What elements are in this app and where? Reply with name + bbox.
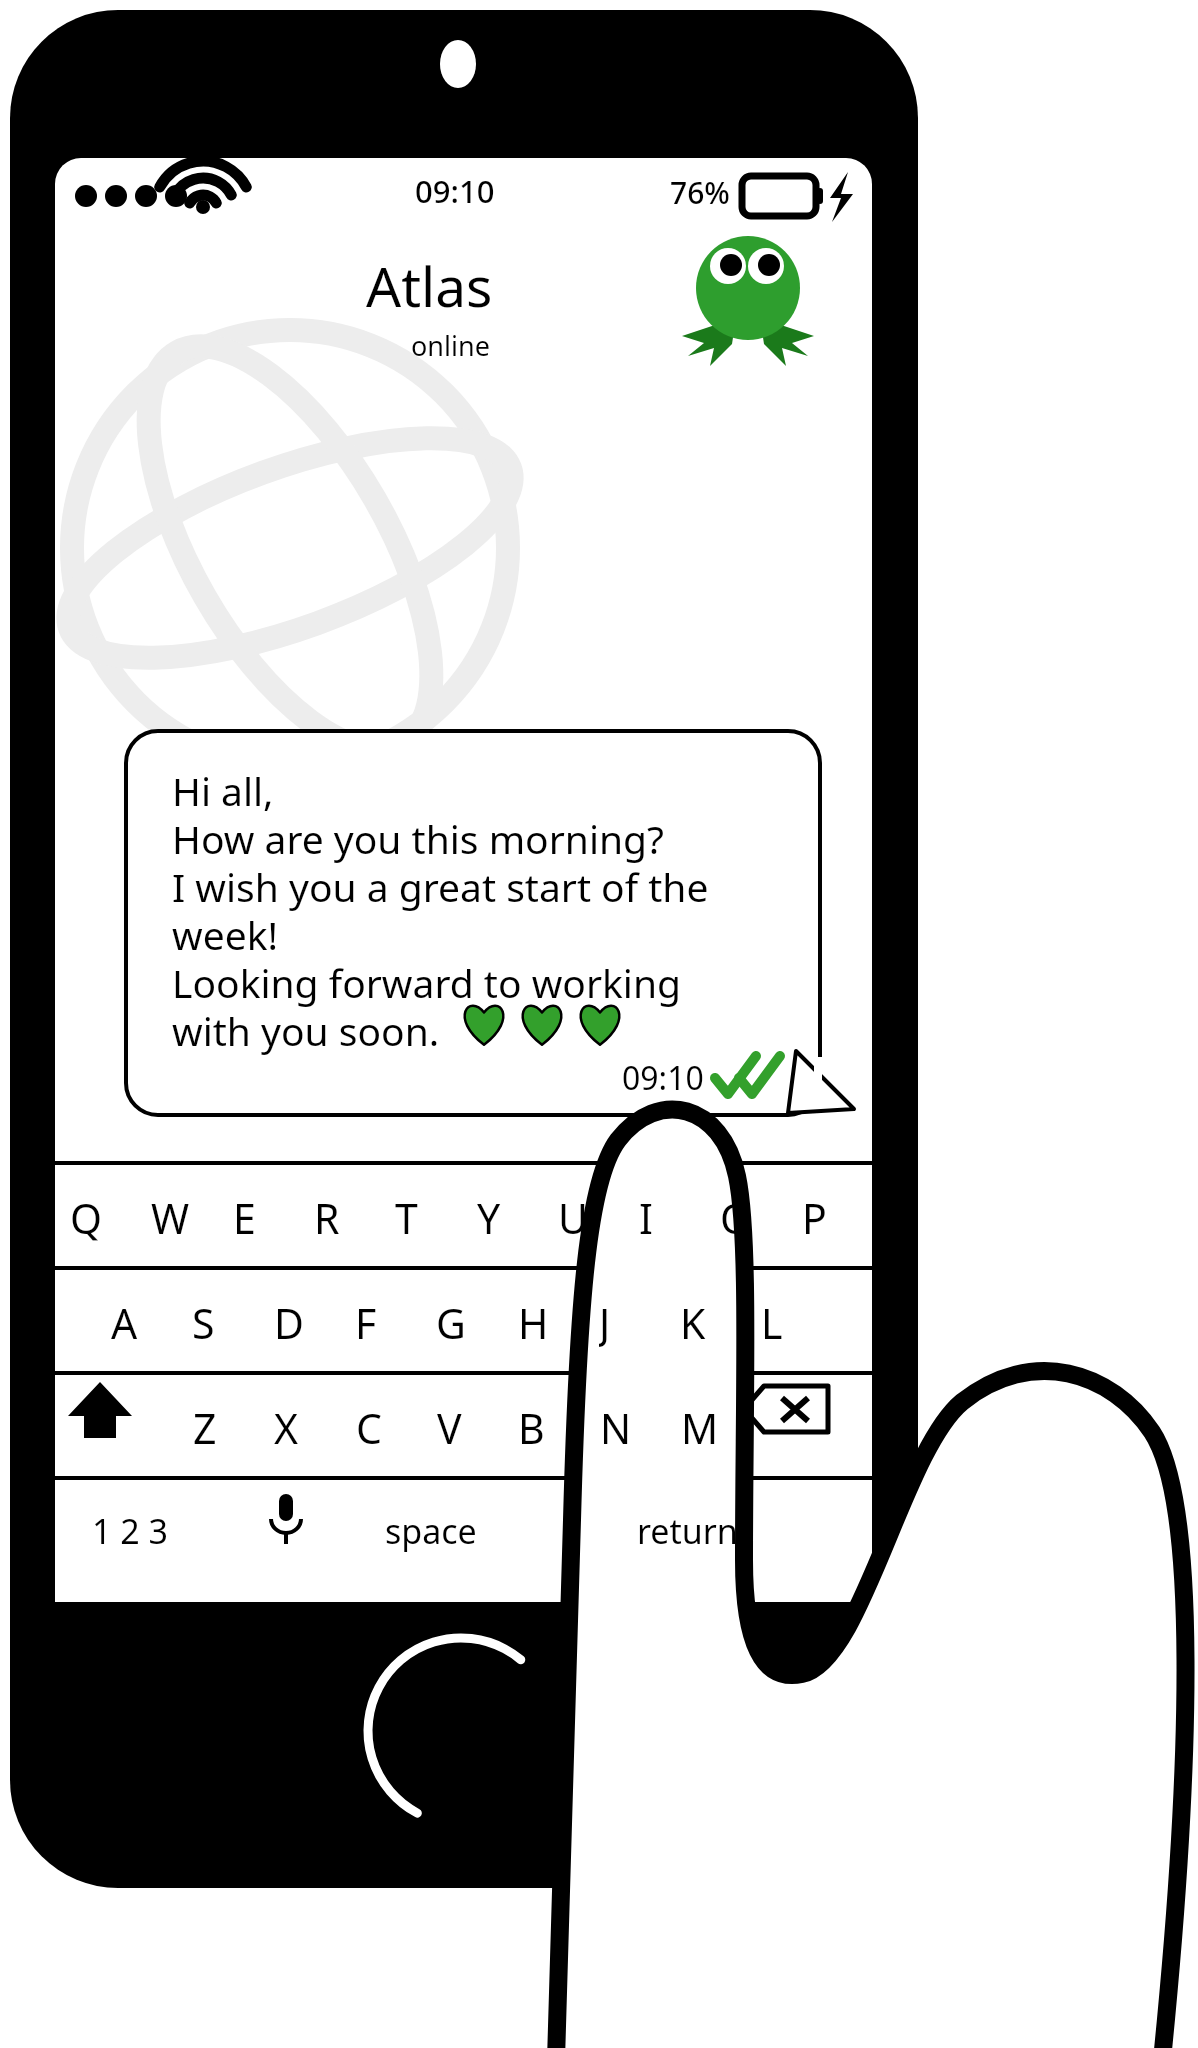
- staticText: J: [599, 1295, 611, 1347]
- button[interactable]: W: [151, 1190, 191, 1242]
- staticText: C: [356, 1400, 382, 1452]
- button[interactable]: C: [356, 1400, 396, 1452]
- button[interactable]: Q: [70, 1190, 110, 1242]
- button[interactable]: R: [314, 1190, 354, 1242]
- button[interactable]: B: [518, 1400, 558, 1452]
- button[interactable]: T: [395, 1190, 435, 1242]
- staticText: return: [637, 1508, 738, 1554]
- button[interactable]: F: [355, 1295, 395, 1347]
- staticText: X: [274, 1400, 299, 1452]
- button[interactable]: return: [637, 1508, 757, 1560]
- staticText: H: [518, 1295, 549, 1347]
- staticText: T: [395, 1190, 418, 1242]
- staticText: Atlas: [366, 248, 493, 322]
- staticText: U: [558, 1190, 588, 1242]
- staticText: R: [314, 1190, 340, 1242]
- button[interactable]: J: [599, 1295, 639, 1347]
- button[interactable]: I: [639, 1190, 679, 1242]
- button[interactable]: Z: [193, 1400, 233, 1452]
- staticText: P: [802, 1190, 827, 1242]
- button[interactable]: V: [437, 1400, 477, 1452]
- button[interactable]: Y: [477, 1190, 517, 1242]
- button[interactable]: L: [761, 1295, 801, 1347]
- staticText: G: [436, 1295, 466, 1347]
- staticText: A: [111, 1295, 138, 1347]
- button[interactable]: U: [558, 1190, 598, 1242]
- staticText: N: [600, 1400, 632, 1452]
- button[interactable]: X: [274, 1400, 314, 1452]
- button[interactable]: Contact avatar: [676, 228, 826, 378]
- staticText: S: [192, 1295, 215, 1347]
- staticText: online: [411, 327, 490, 364]
- staticText: Y: [477, 1190, 501, 1242]
- staticText: 76%: [670, 172, 730, 213]
- button[interactable]: M: [681, 1400, 721, 1452]
- button[interactable]: O: [720, 1190, 760, 1242]
- button[interactable]: 1 2 3: [92, 1508, 212, 1560]
- staticText: Z: [193, 1400, 217, 1452]
- staticText: W: [151, 1190, 190, 1242]
- button[interactable]: D: [274, 1295, 314, 1347]
- staticText: 1 2 3: [92, 1508, 169, 1554]
- button[interactable]: P: [802, 1190, 842, 1242]
- staticText: L: [761, 1295, 783, 1347]
- staticText: 09:10: [415, 170, 495, 212]
- staticText: V: [437, 1400, 462, 1452]
- staticText: space: [385, 1508, 477, 1554]
- button[interactable]: A: [111, 1295, 151, 1347]
- button[interactable]: Hi all, How are you this morning? I wish…: [172, 764, 709, 1057]
- button[interactable]: G: [436, 1295, 476, 1347]
- staticText: 09:10: [622, 1056, 704, 1100]
- button[interactable]: H: [518, 1295, 558, 1347]
- staticText: F: [355, 1295, 377, 1347]
- button[interactable]: S: [192, 1295, 232, 1347]
- staticText: M: [681, 1400, 719, 1452]
- staticText: E: [233, 1190, 256, 1242]
- button[interactable]: E: [233, 1190, 273, 1242]
- button[interactable]: K: [680, 1295, 720, 1347]
- button[interactable]: Atlas: [366, 248, 502, 322]
- staticText: I: [639, 1190, 653, 1242]
- staticText: K: [680, 1295, 706, 1347]
- button[interactable]: space: [385, 1508, 505, 1560]
- staticText: B: [518, 1400, 545, 1452]
- staticText: O: [720, 1190, 753, 1242]
- staticText: Q: [70, 1190, 103, 1242]
- button[interactable]: N: [600, 1400, 640, 1452]
- staticText: Hi all, How are you this morning? I wish…: [172, 764, 709, 1057]
- staticText: D: [274, 1295, 304, 1347]
